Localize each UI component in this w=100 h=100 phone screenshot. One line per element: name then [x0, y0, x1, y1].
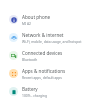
- button[interactable]: About phone: [0, 10, 100, 28]
- button[interactable]: Connected devices: [0, 46, 100, 64]
- staticText: Wi-Fi, mobile, data usage, and hotspot: [22, 39, 82, 43]
- staticText: Recent apps, default apps: [22, 75, 62, 79]
- button[interactable]: Battery: [0, 82, 100, 100]
- button[interactable]: Apps & notifications: [0, 64, 100, 82]
- staticText: About phone: [22, 14, 51, 20]
- staticText: MI A2: [22, 21, 31, 25]
- staticText: Apps & notifications: [22, 68, 66, 74]
- staticText: Bluetooth: [22, 57, 38, 61]
- staticText: 100% - charging: [22, 93, 47, 97]
- staticText: Connected devices: [22, 50, 63, 56]
- staticText: Network & internet: [22, 32, 64, 38]
- button[interactable]: Network & internet: [0, 28, 100, 46]
- staticText: Battery: [22, 86, 38, 92]
